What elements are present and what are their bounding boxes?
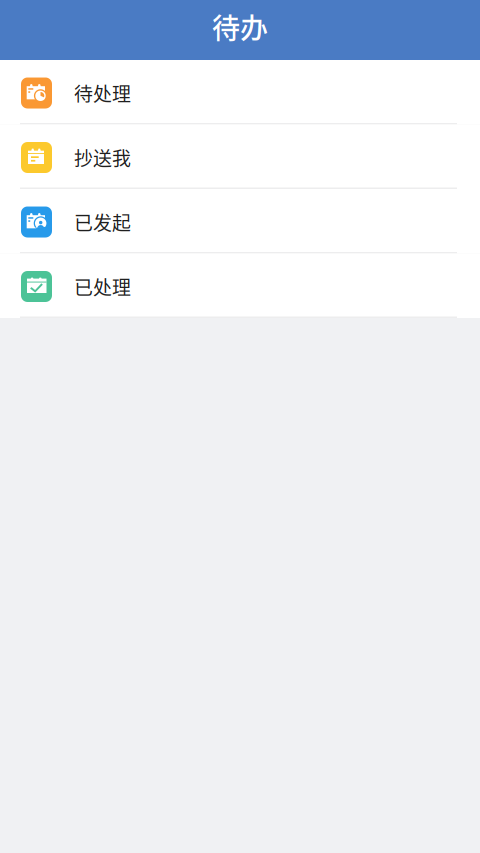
button[interactable]: 抄送我 [0, 124, 480, 189]
button[interactable]: 已处理 [0, 253, 480, 318]
staticText: 已处理 [74, 273, 131, 300]
staticText: 已发起 [74, 208, 131, 236]
button[interactable]: 已发起 [0, 189, 480, 253]
staticText: 抄送我 [74, 144, 131, 171]
button[interactable]: 待处理 [0, 60, 480, 124]
staticText: 待处理 [74, 79, 131, 107]
staticText: 待办 [212, 6, 268, 47]
